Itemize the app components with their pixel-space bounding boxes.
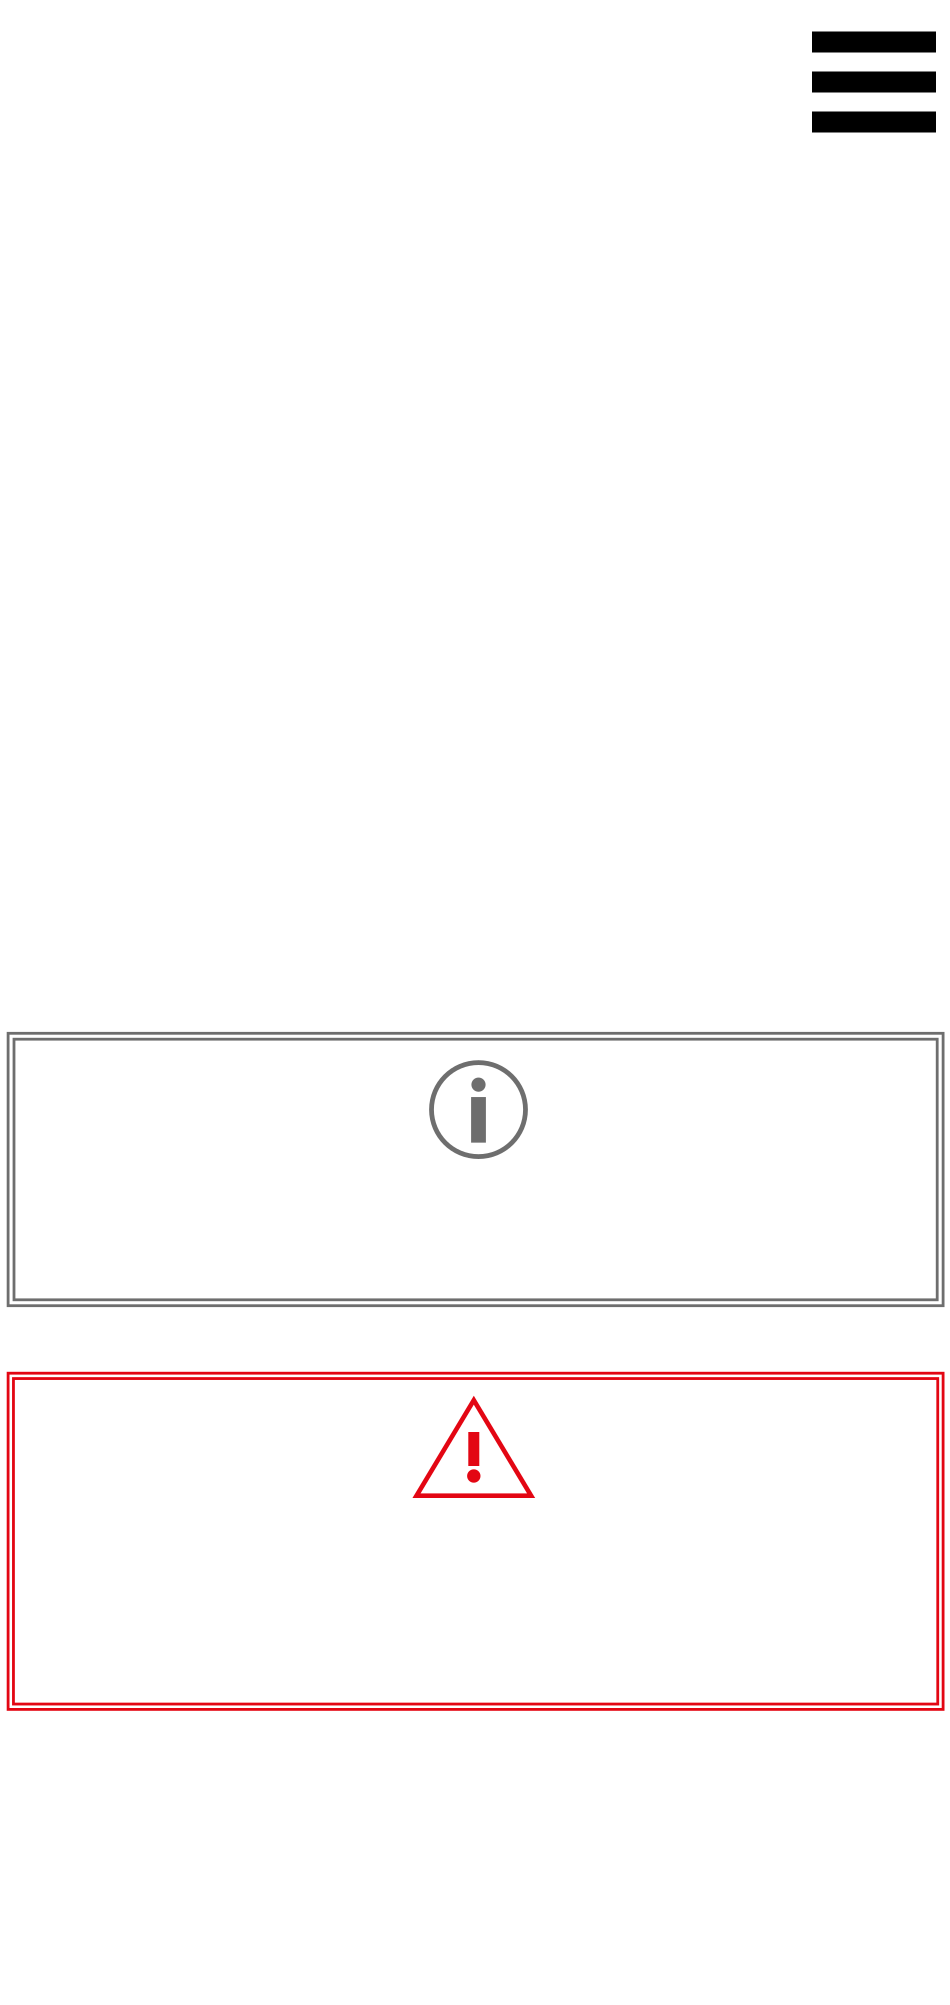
button[interactable]: Menu [798,18,950,146]
